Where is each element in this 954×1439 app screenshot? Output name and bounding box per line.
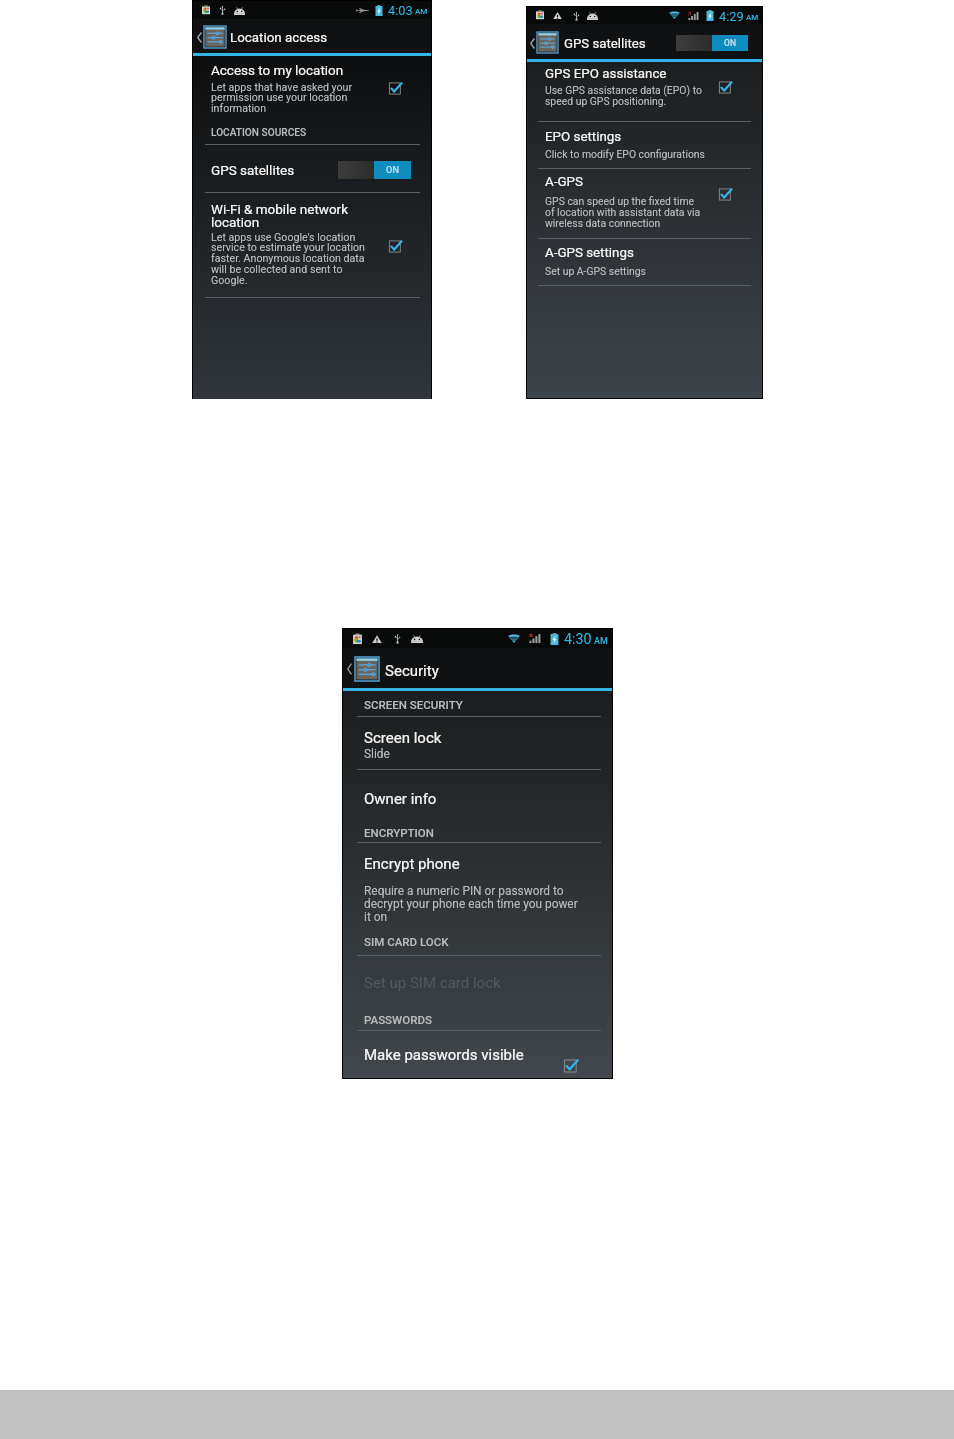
staticText: ENCRYPTION [364,826,434,840]
staticText: Owner info [364,790,437,808]
staticText: Encrypt phone [364,855,460,873]
staticText: Use GPS assistance data (EPO) to speed u… [545,84,706,107]
button[interactable]: GPS satellites [193,145,431,192]
button[interactable]: Wi-Fi and mobile network location [193,193,431,296]
button[interactable]: Checkbox, checked [709,71,741,103]
staticText: AM [746,13,759,22]
button[interactable]: Set up SIM card lock [343,956,612,1004]
staticText: GPS EPO assistance [545,66,667,82]
staticText: 4:30 [564,631,592,648]
staticText: Let apps that have asked your permission… [211,81,371,115]
staticText: LOCATION SOURCES [211,127,307,139]
button[interactable]: On off switch [676,35,748,51]
staticText: Security [385,662,439,680]
staticText: GPS can speed up the fixed time of locat… [545,195,706,229]
staticText: A-GPS settings [545,245,634,261]
button[interactable]: Owner info [343,770,612,815]
staticText: ON [724,38,737,48]
staticText: Let apps use Google's location service t… [211,231,371,287]
staticText: EPO settings [545,129,622,145]
staticText: Access to my location [211,62,344,78]
staticText: Screen lock [364,729,442,747]
button[interactable]: Navigate up [527,32,559,53]
staticText: Slide [364,747,390,761]
staticText: ON [386,165,400,176]
button[interactable]: Navigate up [193,26,226,48]
staticText: Make passwords visible [364,1046,524,1064]
staticText: 4:29 [719,9,744,24]
button[interactable]: On off switch [338,161,411,179]
staticText: Set up SIM card lock [364,974,501,992]
button[interactable]: A-GPS [527,169,762,238]
staticText: Set up A-GPS settings [545,265,706,277]
button[interactable]: A-GPS settings [527,239,762,285]
button[interactable]: Encrypt phone [343,843,612,928]
staticText: Wi-Fi & mobile network location [211,201,371,230]
button[interactable]: Make passwords visible [343,1031,612,1078]
staticText: PASSWORDS [364,1013,432,1027]
button[interactable]: Screen lock [343,717,612,769]
button[interactable]: Checkbox, checked [379,72,411,104]
staticText: 4:03 [388,3,413,18]
staticText: AM [594,636,608,647]
button[interactable]: Access to my location [193,57,431,109]
button[interactable]: Navigate up [343,657,379,681]
staticText: SCREEN SECURITY [364,698,463,712]
button[interactable]: EPO settings [527,122,762,168]
button[interactable]: Checkbox, checked [554,1049,588,1083]
button[interactable]: Checkbox, checked [379,230,411,262]
staticText: Require a numeric PIN or password to dec… [364,884,582,924]
staticText: GPS satellites [564,36,646,52]
staticText: A-GPS [545,174,583,190]
staticText: Location access [230,30,328,46]
staticText: Click to modify EPO configurations [545,148,706,160]
button[interactable]: GPS EPO assistance [527,62,762,120]
staticText: GPS satellites [211,162,295,178]
staticText: SIM CARD LOCK [364,935,449,949]
button[interactable]: Checkbox, checked [709,178,741,210]
staticText: AM [415,7,428,16]
